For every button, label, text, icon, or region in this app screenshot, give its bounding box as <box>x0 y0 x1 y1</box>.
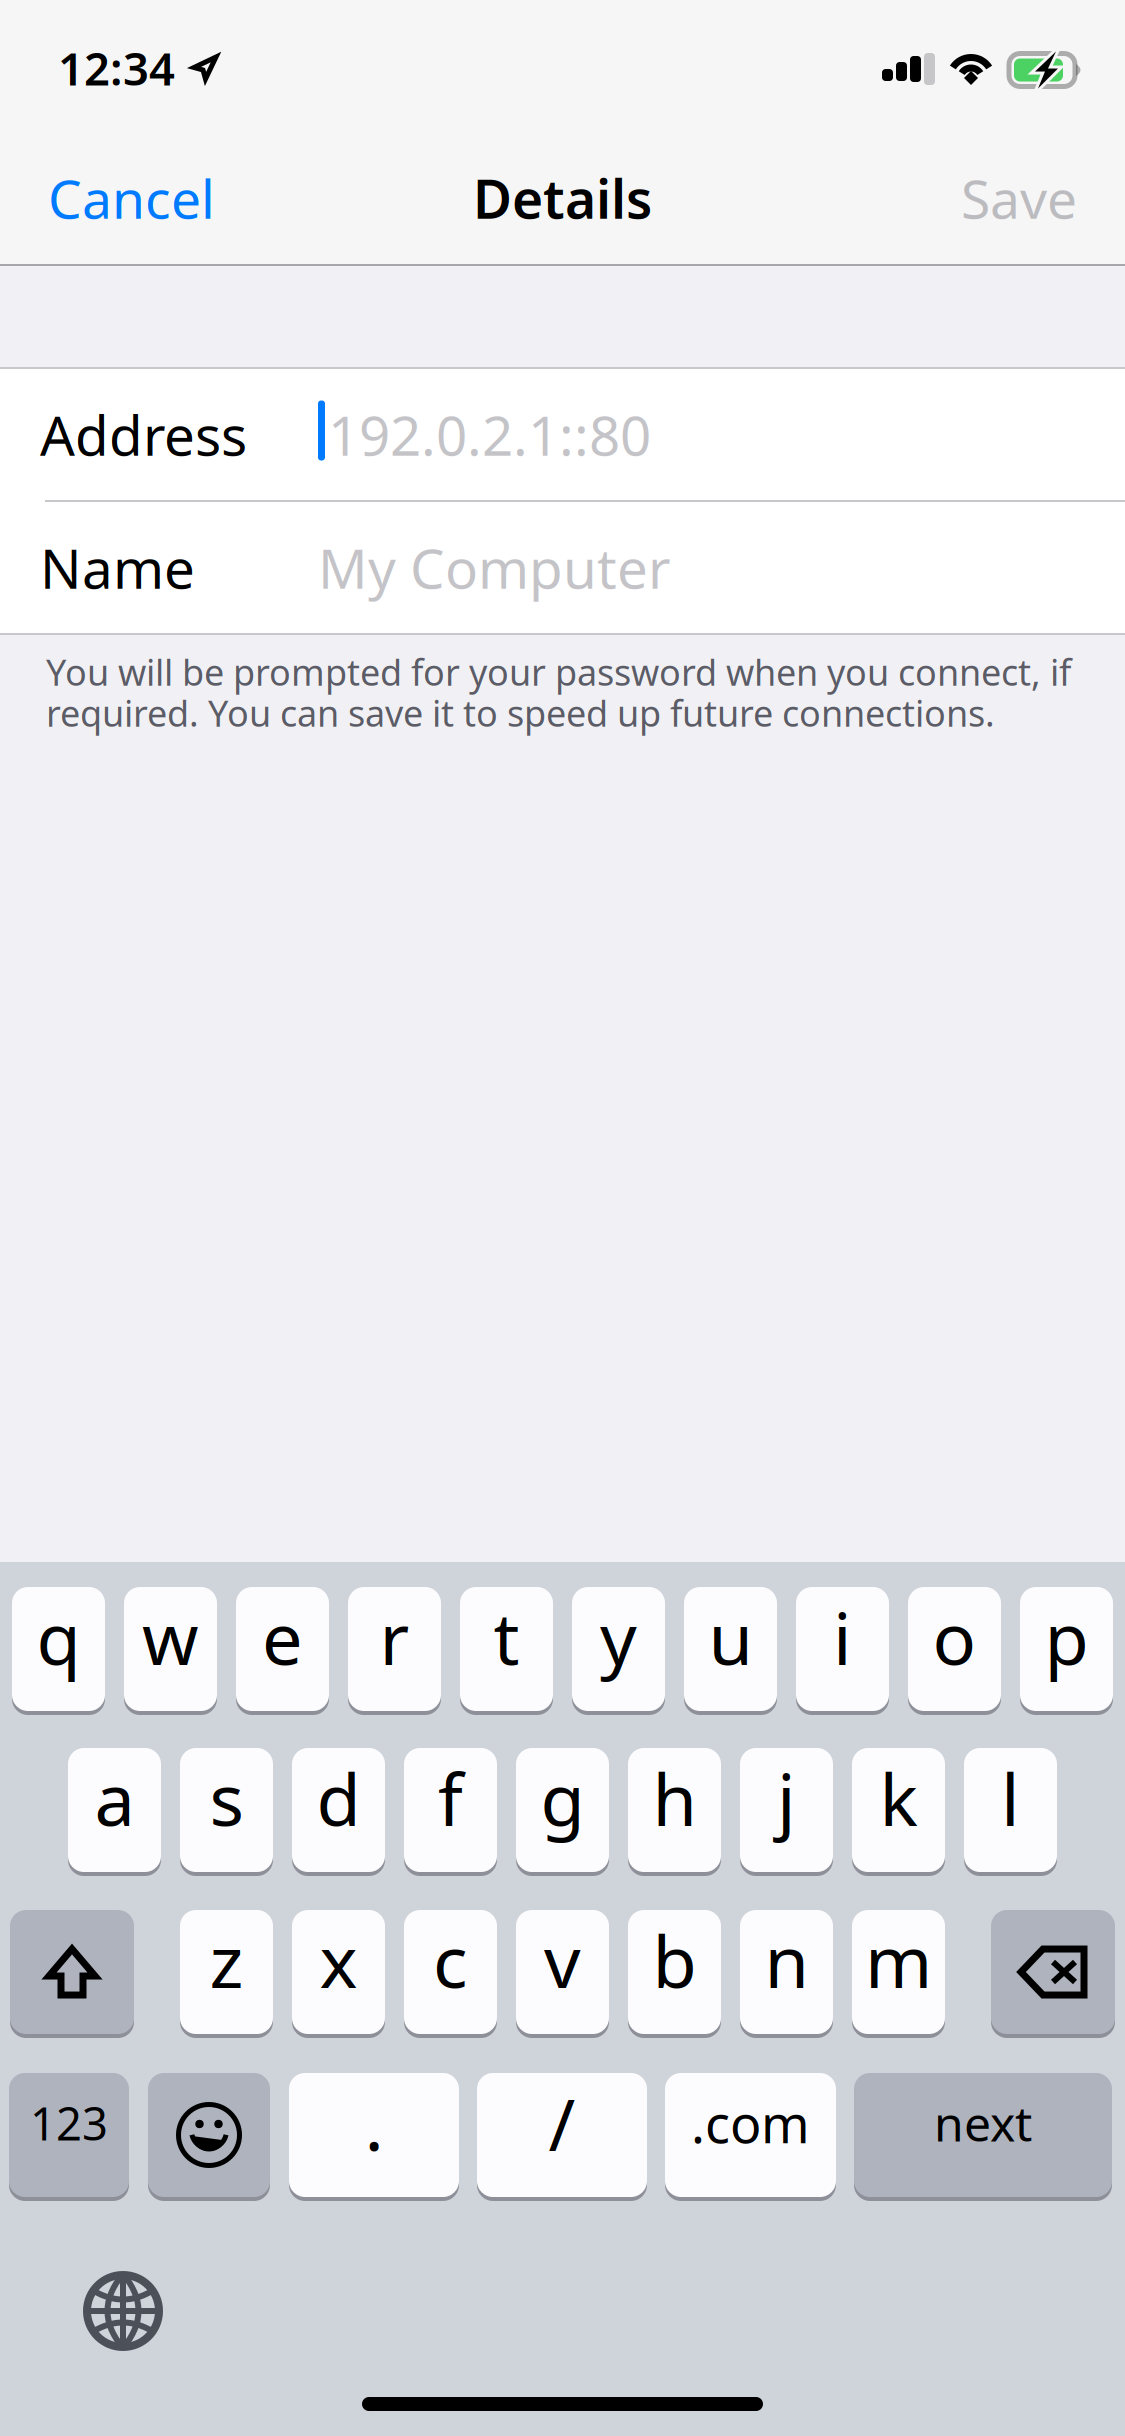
staticText: j <box>777 1750 796 1846</box>
staticText: x <box>319 1912 357 2008</box>
staticText: Details <box>473 163 652 233</box>
staticText: Cancel <box>48 163 215 233</box>
button[interactable]: l <box>964 1746 1057 1874</box>
staticText: u <box>708 1589 752 1685</box>
button[interactable]: v <box>516 1908 609 2036</box>
staticText: k <box>879 1750 917 1846</box>
staticText: b <box>652 1912 696 2008</box>
button[interactable]: o <box>908 1585 1001 1713</box>
staticText: .com <box>691 2088 810 2158</box>
button[interactable]: g <box>516 1746 609 1874</box>
button[interactable]: r <box>348 1585 441 1713</box>
staticText: . <box>364 2075 383 2171</box>
button[interactable]: w <box>124 1585 217 1713</box>
button[interactable]: Save <box>931 132 1125 264</box>
staticText: s <box>209 1750 243 1846</box>
button[interactable]: Delete <box>991 1908 1115 2036</box>
staticText: z <box>209 1912 243 2008</box>
button[interactable]: Next keyboard <box>68 2256 178 2366</box>
button[interactable]: c <box>404 1908 497 2036</box>
staticText: My Computer <box>318 531 671 604</box>
button[interactable]: y <box>572 1585 665 1713</box>
button[interactable]: 123 <box>9 2071 129 2199</box>
staticText: f <box>438 1750 463 1846</box>
staticText: t <box>493 1589 519 1685</box>
button[interactable]: i <box>796 1585 889 1713</box>
button[interactable]: b <box>628 1908 721 2036</box>
staticText: p <box>1044 1589 1088 1685</box>
button[interactable]: Name <box>0 502 1125 633</box>
button[interactable]: Emoji keyboard <box>148 2071 270 2199</box>
button[interactable]: e <box>236 1585 329 1713</box>
button[interactable]: p <box>1020 1585 1113 1713</box>
staticText: r <box>379 1589 409 1685</box>
button[interactable]: / <box>477 2071 647 2199</box>
button[interactable]: next <box>854 2071 1112 2199</box>
staticText: i <box>833 1589 852 1685</box>
button[interactable]: h <box>628 1746 721 1874</box>
staticText: a <box>94 1750 134 1846</box>
button[interactable]: Address <box>0 369 1125 500</box>
staticText: 123 <box>30 2093 108 2153</box>
staticText: e <box>262 1589 303 1685</box>
button[interactable]: f <box>404 1746 497 1874</box>
staticText: Name <box>40 531 195 604</box>
staticText: n <box>764 1912 808 2008</box>
button[interactable]: Cancel <box>0 132 245 264</box>
button[interactable]: j <box>740 1746 833 1874</box>
staticText: g <box>540 1750 584 1846</box>
button[interactable]: . <box>289 2071 459 2199</box>
button[interactable]: d <box>292 1746 385 1874</box>
staticText: q <box>36 1589 80 1685</box>
button[interactable]: u <box>684 1585 777 1713</box>
button[interactable]: n <box>740 1908 833 2036</box>
staticText: / <box>548 2075 575 2171</box>
staticText: w <box>142 1589 199 1685</box>
staticText: Address <box>40 398 247 471</box>
staticText: m <box>865 1912 932 2008</box>
button[interactable]: s <box>180 1746 273 1874</box>
button[interactable]: .com <box>665 2071 836 2199</box>
button[interactable]: a <box>68 1746 161 1874</box>
button[interactable]: k <box>852 1746 945 1874</box>
button[interactable]: m <box>852 1908 945 2036</box>
button[interactable]: q <box>12 1585 105 1713</box>
button[interactable]: Shift <box>10 1908 134 2036</box>
staticText: o <box>932 1589 976 1685</box>
staticText: l <box>1001 1750 1020 1846</box>
staticText: v <box>544 1912 581 2008</box>
staticText: 12:34 <box>58 38 175 98</box>
staticText: h <box>652 1750 696 1846</box>
button[interactable]: t <box>460 1585 553 1713</box>
staticText: d <box>316 1750 360 1846</box>
staticText: You will be prompted for your password w… <box>46 648 1071 737</box>
staticText: c <box>433 1912 468 2008</box>
staticText: 192.0.2.1::80 <box>328 398 651 471</box>
staticText: Save <box>961 163 1077 233</box>
button[interactable]: x <box>292 1908 385 2036</box>
button[interactable]: z <box>180 1908 273 2036</box>
staticText: y <box>600 1589 637 1685</box>
staticText: next <box>934 2091 1032 2155</box>
